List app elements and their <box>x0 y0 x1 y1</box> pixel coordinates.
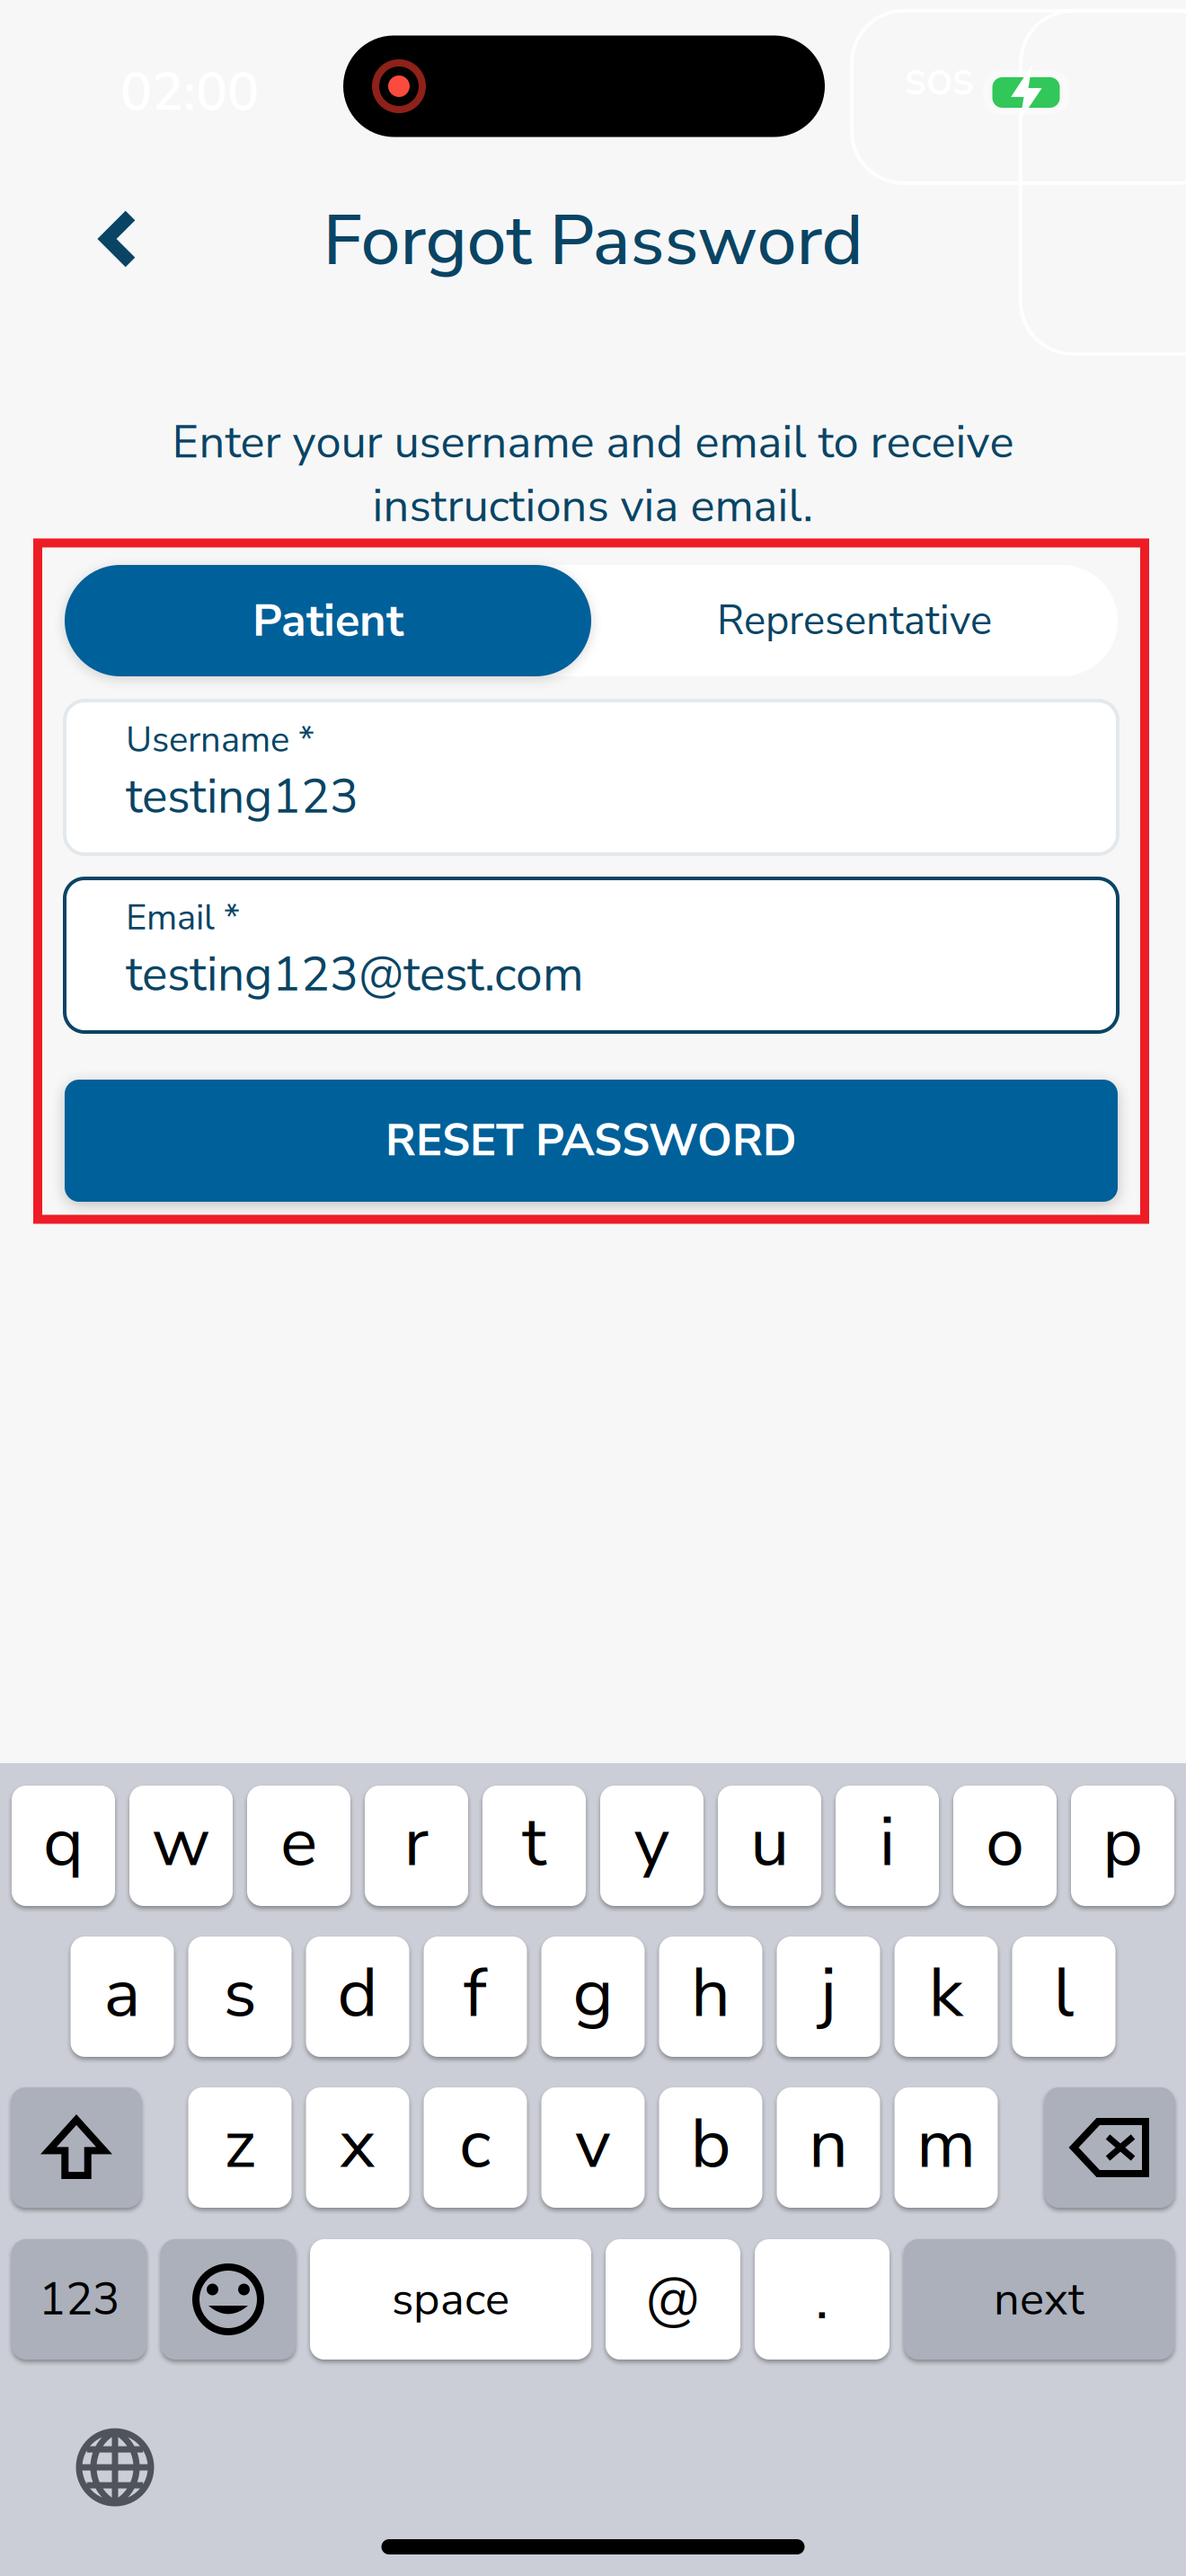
staticText: e <box>280 1795 317 1890</box>
staticText: 123 <box>39 2268 119 2330</box>
button[interactable]: space <box>310 2239 591 2360</box>
button[interactable]: o <box>953 1786 1057 1906</box>
button[interactable]: v <box>541 2087 645 2208</box>
staticText: SOS <box>905 61 974 106</box>
staticText: u <box>750 1795 789 1890</box>
staticText: d <box>337 1946 378 2041</box>
staticText: b <box>690 2097 731 2191</box>
button[interactable]: Emoji <box>161 2239 296 2360</box>
button[interactable]: @ <box>606 2239 740 2360</box>
button[interactable]: d <box>306 1936 409 2057</box>
button[interactable]: Username * <box>65 701 1118 854</box>
staticText: h <box>691 1946 730 2041</box>
staticText: v <box>575 2097 611 2191</box>
staticText: testing123@test.com <box>126 942 584 1007</box>
staticText: o <box>986 1795 1024 1890</box>
staticText: Username * <box>126 715 314 764</box>
button[interactable]: l <box>1012 1936 1115 2057</box>
staticText: i <box>879 1795 895 1890</box>
button[interactable]: z <box>188 2087 292 2208</box>
button[interactable]: x <box>306 2087 409 2208</box>
button[interactable]: Patient <box>65 565 591 676</box>
button[interactable]: s <box>188 1936 292 2057</box>
button[interactable]: u <box>718 1786 821 1906</box>
button[interactable]: g <box>541 1936 645 2057</box>
button[interactable]: Representative <box>591 565 1118 676</box>
staticText: Forgot Password <box>323 192 863 289</box>
staticText: f <box>464 1946 487 2041</box>
staticText: Representative <box>717 593 992 648</box>
button[interactable]: n <box>777 2087 880 2208</box>
button[interactable]: m <box>894 2087 998 2208</box>
staticText: z <box>224 2097 256 2191</box>
button[interactable]: Back <box>60 176 177 302</box>
staticText: next <box>994 2268 1084 2330</box>
button[interactable]: w <box>129 1786 233 1906</box>
staticText: k <box>929 1946 964 2041</box>
button[interactable]: k <box>894 1936 998 2057</box>
staticText: instructions via email. <box>372 475 814 537</box>
button[interactable]: Delete <box>1044 2087 1175 2208</box>
staticText: n <box>809 2097 848 2191</box>
staticText: . <box>815 2260 829 2339</box>
staticText: @ <box>646 2260 700 2339</box>
staticText: s <box>223 1946 257 2041</box>
staticText: c <box>459 2097 491 2191</box>
staticText: RESET PASSWORD <box>385 1111 797 1171</box>
button[interactable]: f <box>424 1936 527 2057</box>
staticText: Enter your username and email to receive <box>172 411 1014 473</box>
button[interactable]: h <box>659 1936 762 2057</box>
button[interactable]: RESET PASSWORD <box>65 1080 1118 1202</box>
staticText: space <box>392 2268 509 2330</box>
staticText: y <box>634 1795 670 1890</box>
button[interactable]: e <box>247 1786 350 1906</box>
staticText: testing123 <box>126 764 358 830</box>
button[interactable]: j <box>777 1936 880 2057</box>
staticText: t <box>522 1795 546 1890</box>
staticText: Email * <box>126 893 240 942</box>
staticText: a <box>104 1946 141 2041</box>
button[interactable]: Email * <box>65 878 1118 1032</box>
staticText: r <box>404 1795 429 1890</box>
button[interactable]: r <box>365 1786 468 1906</box>
staticText: x <box>339 2097 376 2191</box>
button[interactable]: p <box>1071 1786 1174 1906</box>
button[interactable]: i <box>836 1786 939 1906</box>
staticText: q <box>43 1795 84 1890</box>
staticText: p <box>1102 1795 1143 1890</box>
staticText: w <box>152 1795 210 1890</box>
button[interactable]: c <box>424 2087 527 2208</box>
button[interactable]: t <box>482 1786 586 1906</box>
button[interactable]: b <box>659 2087 762 2208</box>
staticText: Patient <box>252 590 403 652</box>
staticText: m <box>916 2097 976 2191</box>
staticText: l <box>1053 1946 1074 2041</box>
button[interactable]: . <box>755 2239 889 2360</box>
button[interactable]: a <box>71 1936 174 2057</box>
button[interactable]: Switch keyboard <box>66 2419 164 2516</box>
button[interactable]: Shift <box>11 2087 142 2208</box>
staticText: g <box>573 1946 613 2041</box>
button[interactable]: y <box>600 1786 704 1906</box>
staticText: j <box>820 1946 836 2041</box>
button[interactable]: q <box>12 1786 115 1906</box>
button[interactable]: 123 <box>12 2239 146 2360</box>
button[interactable]: next <box>904 2239 1174 2360</box>
